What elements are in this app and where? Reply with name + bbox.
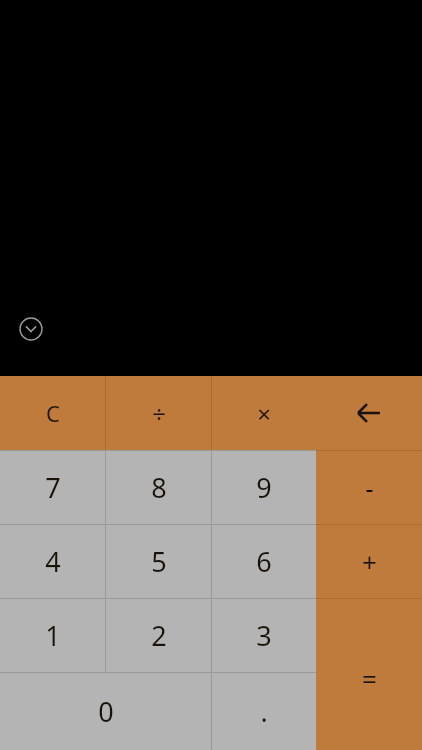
staticText: 7 (45, 469, 61, 506)
button[interactable]: + (316, 525, 422, 598)
staticText: 0 (98, 693, 114, 730)
button[interactable]: 9 (212, 451, 316, 524)
staticText: - (365, 470, 374, 505)
button[interactable]: 3 (212, 599, 316, 672)
staticText: 2 (151, 617, 167, 654)
staticText: 8 (151, 469, 167, 506)
staticText: 9 (256, 469, 272, 506)
button[interactable]: Expand history (19, 317, 43, 341)
button[interactable]: 8 (106, 451, 211, 524)
staticText: 1 (45, 617, 61, 654)
staticText: 4 (45, 543, 61, 580)
staticText: 5 (151, 543, 167, 580)
button[interactable]: - (316, 451, 422, 524)
other: Expand history (19, 317, 43, 341)
button[interactable]: 4 (0, 525, 105, 598)
button[interactable]: Backspace (316, 376, 422, 450)
button[interactable]: × (212, 376, 316, 450)
button[interactable]: 1 (0, 599, 105, 672)
staticText: C (46, 398, 60, 428)
other: Backspace (352, 396, 386, 430)
button[interactable]: C (0, 376, 105, 450)
button[interactable]: 2 (106, 599, 211, 672)
button[interactable]: 0 (0, 673, 211, 750)
staticText: . (260, 693, 268, 730)
staticText: = (362, 661, 377, 696)
staticText: × (257, 397, 271, 430)
staticText: ÷ (152, 397, 166, 430)
button[interactable]: 7 (0, 451, 105, 524)
staticText: 3 (256, 617, 272, 654)
button[interactable]: = (316, 599, 422, 750)
button[interactable]: 5 (106, 525, 211, 598)
button[interactable]: . (212, 673, 316, 750)
button[interactable]: ÷ (106, 376, 211, 450)
button[interactable]: 6 (212, 525, 316, 598)
staticText: 6 (256, 543, 272, 580)
staticText: + (362, 544, 377, 579)
